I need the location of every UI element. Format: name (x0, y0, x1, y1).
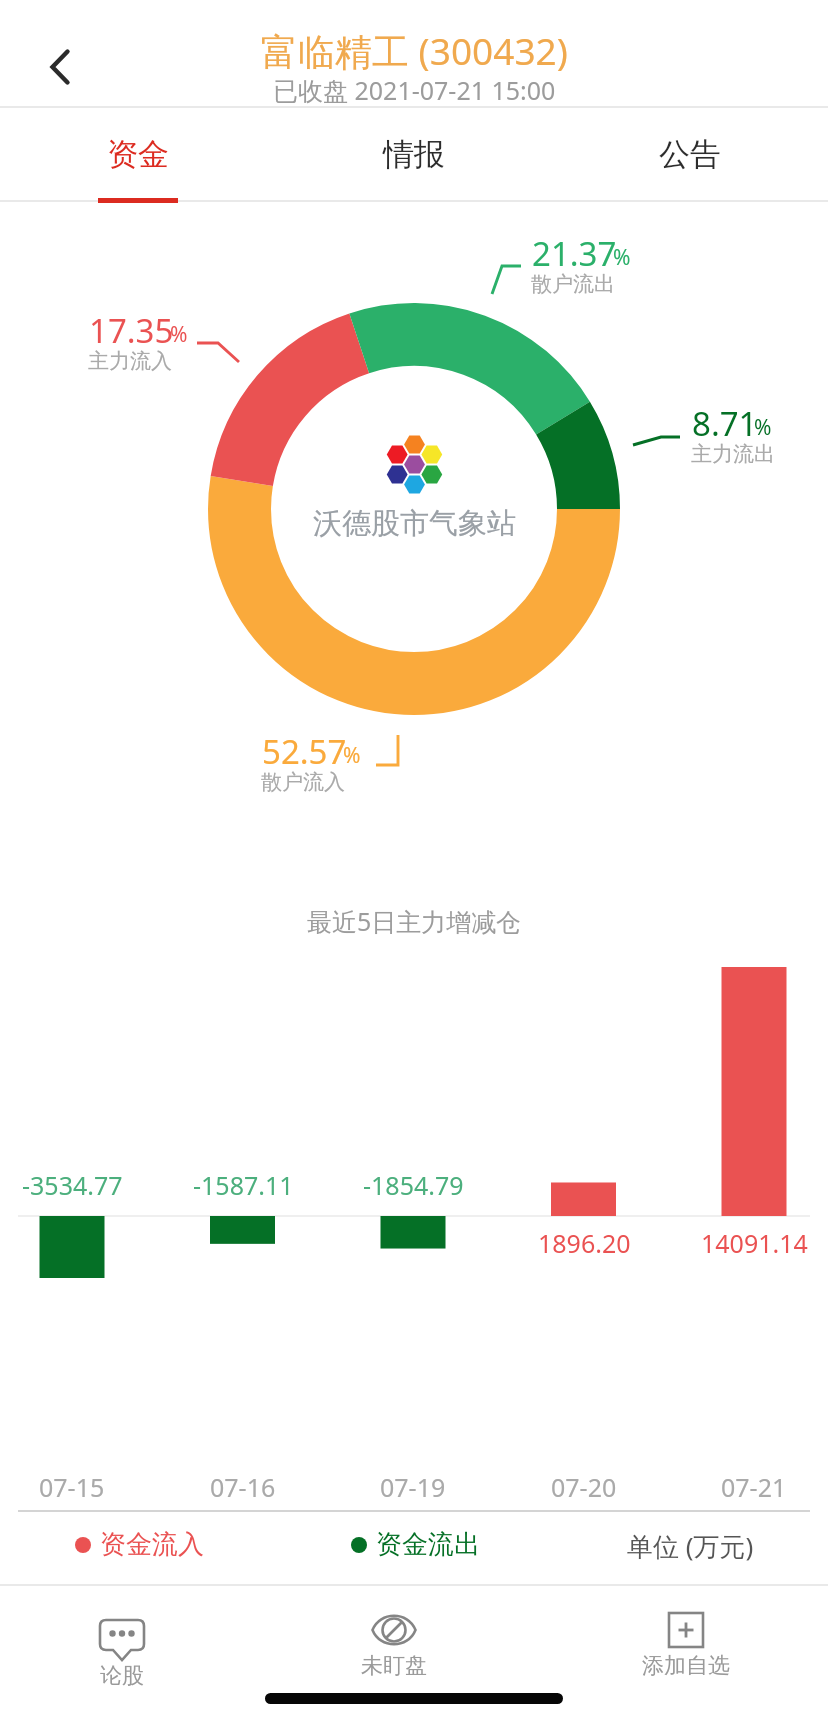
staticText: 散户流入 (261, 769, 345, 795)
staticText: 资金流入 (100, 1528, 204, 1561)
staticText: % (343, 741, 361, 770)
staticText: 论股 (100, 1662, 144, 1690)
button[interactable]: 情报 (276, 108, 552, 200)
staticText: 资金 (107, 135, 169, 174)
staticText: 07-15 (39, 1470, 105, 1504)
staticText: 添加自选 (642, 1652, 730, 1680)
staticText: % (613, 243, 631, 272)
staticText: 21.37 (532, 231, 617, 276)
staticText: 未盯盘 (361, 1652, 427, 1680)
staticText: 07-19 (380, 1470, 446, 1504)
staticText: % (754, 413, 772, 442)
staticText: 资金流出 (376, 1528, 480, 1561)
staticText: 8.71 (692, 401, 758, 446)
staticText: 07-20 (551, 1470, 617, 1504)
staticText: 富临精工 (300432) (261, 25, 568, 76)
staticText: 07-16 (210, 1470, 276, 1504)
staticText: 主力流入 (88, 348, 172, 374)
staticText: 17.35 (89, 308, 174, 353)
button[interactable]: 资金 (0, 108, 276, 200)
staticText: -1854.79 (363, 1168, 464, 1202)
staticText: -1587.11 (193, 1168, 294, 1202)
button[interactable]: 未盯盘 (314, 1590, 474, 1700)
staticText: 14091.14 (701, 1226, 808, 1260)
staticText: 已收盘 2021-07-21 15:00 (273, 73, 556, 107)
staticText: 1896.20 (538, 1226, 631, 1260)
staticText: 情报 (383, 135, 445, 174)
staticText: % (170, 320, 188, 349)
staticText: 散户流出 (531, 271, 615, 297)
button[interactable]: 公告 (552, 108, 828, 200)
staticText: 公告 (659, 135, 721, 174)
button[interactable]: 添加自选 (606, 1590, 766, 1700)
staticText: 主力流出 (691, 441, 775, 467)
staticText: 最近5日主力增减仓 (307, 904, 522, 938)
staticText: 单位 (万元) (627, 1528, 754, 1564)
staticText: -3534.77 (22, 1168, 123, 1202)
button[interactable]: Back (20, 27, 100, 107)
staticText: 52.57 (262, 729, 347, 774)
staticText: 沃德股市气象站 (313, 505, 516, 542)
button[interactable]: 论股 (42, 1590, 202, 1700)
staticText: 07-21 (721, 1470, 787, 1504)
